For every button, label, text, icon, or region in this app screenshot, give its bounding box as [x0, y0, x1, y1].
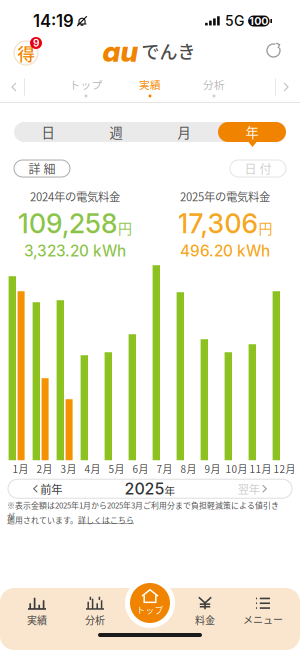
staticText: トップ: [69, 76, 102, 92]
button[interactable]: 実績: [118, 73, 182, 101]
staticText: 得: [17, 40, 34, 66]
staticText: 3,323.20 kWh: [24, 242, 126, 260]
staticText: 109,258: [18, 207, 117, 240]
button[interactable]: 次のページ: [276, 73, 296, 101]
staticText: 9: [33, 37, 39, 49]
staticText: 100: [249, 14, 268, 27]
staticText: 11月: [250, 461, 272, 476]
staticText: 6月: [133, 461, 149, 476]
staticText: 7月: [157, 461, 173, 476]
staticText: 実績: [27, 613, 47, 627]
button[interactable]: 実績: [8, 592, 66, 632]
staticText: 4月: [85, 461, 101, 476]
staticText: 2月: [37, 461, 53, 476]
staticText: 日: [41, 122, 54, 142]
staticText: 12月: [274, 461, 296, 476]
button[interactable]: 料金: [176, 592, 234, 632]
staticText: 日 付: [244, 160, 271, 177]
staticText: でんき: [141, 38, 195, 64]
button[interactable]: 分析: [182, 73, 246, 101]
staticText: 前年: [40, 480, 62, 497]
button[interactable]: トップ: [54, 73, 118, 101]
button[interactable]: トップ: [125, 578, 175, 628]
staticText: 2025: [124, 479, 164, 498]
button[interactable]: 日: [14, 122, 82, 142]
button[interactable]: 詳しくはこちら: [78, 514, 134, 525]
staticText: 1月: [13, 461, 29, 476]
button[interactable]: 日 付: [230, 160, 286, 177]
staticText: 5G: [225, 12, 244, 29]
button[interactable]: 詳 細: [14, 160, 70, 177]
staticText: 円: [258, 217, 272, 238]
staticText: 496.20 kWh: [180, 242, 270, 260]
staticText: トップ: [136, 604, 163, 616]
button[interactable]: 年: [218, 122, 286, 142]
staticText: 分析: [203, 76, 225, 92]
button[interactable]: 月: [150, 122, 218, 142]
staticText: 2024年の電気料金: [30, 188, 120, 204]
staticText: トップ: [136, 604, 163, 616]
button[interactable]: 前年: [13, 480, 83, 498]
staticText: 17,306: [177, 207, 257, 240]
button[interactable]: お得情報: [12, 35, 44, 67]
button[interactable]: メニュー: [234, 592, 292, 632]
staticText: 詳しくはこちら: [78, 514, 134, 525]
staticText: 3月: [61, 461, 77, 476]
staticText: 適用されています。: [7, 514, 78, 525]
staticText: 分析: [85, 613, 105, 627]
staticText: 実績: [139, 76, 161, 92]
staticText: 月: [177, 122, 190, 142]
staticText: メニュー: [243, 612, 283, 627]
staticText: 年: [164, 482, 175, 498]
button[interactable]: 更新: [260, 37, 288, 65]
button[interactable]: 週: [82, 122, 150, 142]
button[interactable]: 分析: [66, 592, 124, 632]
staticText: 9月: [205, 461, 221, 476]
staticText: 8月: [181, 461, 197, 476]
staticText: ※表示金額は2025年1月から2025年3月ご利用分まで負担軽減策による値引きが: [7, 499, 279, 522]
staticText: 翌年: [238, 480, 260, 497]
staticText: 詳 細: [28, 160, 55, 177]
staticText: 5月: [109, 461, 125, 476]
staticText: 14:19: [33, 11, 74, 31]
button[interactable]: 翌年: [217, 480, 287, 498]
staticText: 週: [109, 122, 122, 142]
staticText: 円: [118, 217, 132, 238]
staticText: 年: [245, 122, 258, 142]
button[interactable]: 前のページ: [4, 73, 24, 101]
staticText: 料金: [195, 613, 215, 627]
staticText: 10月: [226, 461, 248, 476]
staticText: au: [102, 33, 138, 69]
staticText: 2025年の電気料金: [180, 188, 270, 204]
